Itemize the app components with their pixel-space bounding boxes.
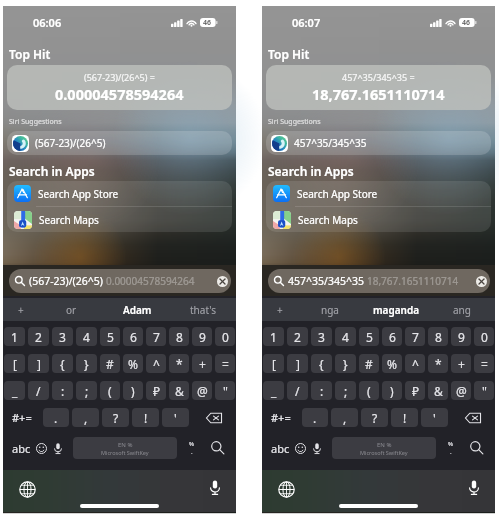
button[interactable]: # xyxy=(359,354,379,373)
button[interactable]: 1 xyxy=(4,327,25,346)
button[interactable]: 4 xyxy=(76,327,97,346)
button[interactable]: / xyxy=(287,381,308,400)
button[interactable]: Keyboard settings xyxy=(442,437,458,459)
button[interactable]: #+= xyxy=(4,408,40,427)
button[interactable]: @ xyxy=(192,381,212,400)
button[interactable]: _ xyxy=(263,381,284,400)
button[interactable]: : xyxy=(52,381,73,400)
button[interactable]: ? xyxy=(361,408,388,427)
button[interactable]: . xyxy=(302,408,328,427)
button[interactable]: } xyxy=(76,354,97,373)
button[interactable]: , xyxy=(331,408,358,427)
button[interactable]: Search xyxy=(465,437,489,459)
button[interactable]: 0 xyxy=(474,327,494,346)
button[interactable]: 0 xyxy=(215,327,235,346)
button[interactable]: Search xyxy=(9,269,231,293)
button[interactable]: ^ xyxy=(405,354,425,373)
button[interactable]: Search Maps xyxy=(266,207,491,232)
button[interactable]: 6 xyxy=(382,327,402,346)
button[interactable]: ₽ xyxy=(146,381,166,400)
button[interactable]: (567-23)/(26^5) = xyxy=(7,65,232,110)
button[interactable]: 8 xyxy=(428,327,448,346)
button[interactable]: { xyxy=(311,354,332,373)
button[interactable]: ? xyxy=(102,408,129,427)
button[interactable]: / xyxy=(28,381,49,400)
button[interactable]: 457^35/345^35 xyxy=(266,131,491,155)
button[interactable]: Emoji xyxy=(293,437,308,459)
button[interactable]: abc xyxy=(267,437,293,459)
button[interactable]: ! xyxy=(391,408,418,427)
button[interactable]: ! xyxy=(132,408,159,427)
button[interactable]: Clear text xyxy=(217,276,228,287)
button[interactable]: 9 xyxy=(451,327,471,346)
button[interactable]: Voice input xyxy=(308,437,326,459)
button[interactable]: % xyxy=(382,354,402,373)
button[interactable]: _ xyxy=(4,381,25,400)
button[interactable]: Clear text xyxy=(476,276,487,287)
button[interactable]: EN % xyxy=(332,437,436,459)
button[interactable]: Change keyboard xyxy=(278,481,295,498)
button[interactable]: . xyxy=(43,408,69,427)
button[interactable]: Search App Store xyxy=(266,181,491,206)
button[interactable]: + xyxy=(451,354,471,373)
button[interactable]: Voice input xyxy=(49,437,67,459)
button[interactable]: 7 xyxy=(405,327,425,346)
button[interactable]: 2 xyxy=(287,327,308,346)
button[interactable]: } xyxy=(335,354,356,373)
button[interactable]: 2 xyxy=(28,327,49,346)
button[interactable]: & xyxy=(169,381,189,400)
button[interactable]: #+= xyxy=(263,408,299,427)
button[interactable]: " xyxy=(474,381,494,400)
button[interactable]: 6 xyxy=(123,327,143,346)
button[interactable]: " xyxy=(215,381,235,400)
button[interactable]: + xyxy=(192,354,212,373)
button[interactable]: 3 xyxy=(52,327,73,346)
button[interactable]: [ xyxy=(4,354,25,373)
button[interactable]: abc xyxy=(8,437,34,459)
button[interactable]: = xyxy=(474,354,494,373)
button[interactable]: : xyxy=(311,381,332,400)
button[interactable]: 9 xyxy=(192,327,212,346)
button[interactable]: ' xyxy=(421,408,448,427)
button[interactable]: Change keyboard xyxy=(19,481,36,498)
button[interactable]: + xyxy=(262,298,297,321)
button[interactable]: ) xyxy=(123,381,143,400)
button[interactable]: Search App Store xyxy=(7,181,232,206)
button[interactable]: ( xyxy=(359,381,379,400)
button[interactable]: ( xyxy=(100,381,120,400)
button[interactable]: 5 xyxy=(100,327,120,346)
button[interactable]: 457^35/345^35 = xyxy=(266,65,491,110)
button[interactable]: Backspace xyxy=(451,408,494,427)
button[interactable]: = xyxy=(215,354,235,373)
button[interactable]: 1 xyxy=(263,327,284,346)
button[interactable]: nga xyxy=(297,298,363,321)
button[interactable]: 4 xyxy=(335,327,356,346)
button[interactable]: Backspace xyxy=(192,408,235,427)
button[interactable]: Emoji xyxy=(34,437,49,459)
button[interactable]: % xyxy=(123,354,143,373)
button[interactable]: @ xyxy=(451,381,471,400)
button[interactable]: that's xyxy=(170,298,236,321)
button[interactable]: ) xyxy=(382,381,402,400)
button[interactable]: ] xyxy=(28,354,49,373)
button[interactable]: ] xyxy=(287,354,308,373)
button[interactable]: or xyxy=(38,298,104,321)
button[interactable]: * xyxy=(428,354,448,373)
button[interactable]: ; xyxy=(76,381,97,400)
button[interactable]: 5 xyxy=(359,327,379,346)
button[interactable]: ^ xyxy=(146,354,166,373)
button[interactable]: * xyxy=(169,354,189,373)
button[interactable]: Search xyxy=(268,269,490,293)
button[interactable]: maganda xyxy=(363,298,429,321)
button[interactable]: # xyxy=(100,354,120,373)
button[interactable]: 3 xyxy=(311,327,332,346)
button[interactable]: 8 xyxy=(169,327,189,346)
button[interactable]: Search Maps xyxy=(7,207,232,232)
button[interactable]: Search xyxy=(206,437,230,459)
button[interactable]: EN % xyxy=(73,437,177,459)
button[interactable]: ' xyxy=(162,408,189,427)
button[interactable]: 7 xyxy=(146,327,166,346)
button[interactable]: Voice input xyxy=(210,480,220,495)
button[interactable]: ; xyxy=(335,381,356,400)
button[interactable]: + xyxy=(3,298,38,321)
